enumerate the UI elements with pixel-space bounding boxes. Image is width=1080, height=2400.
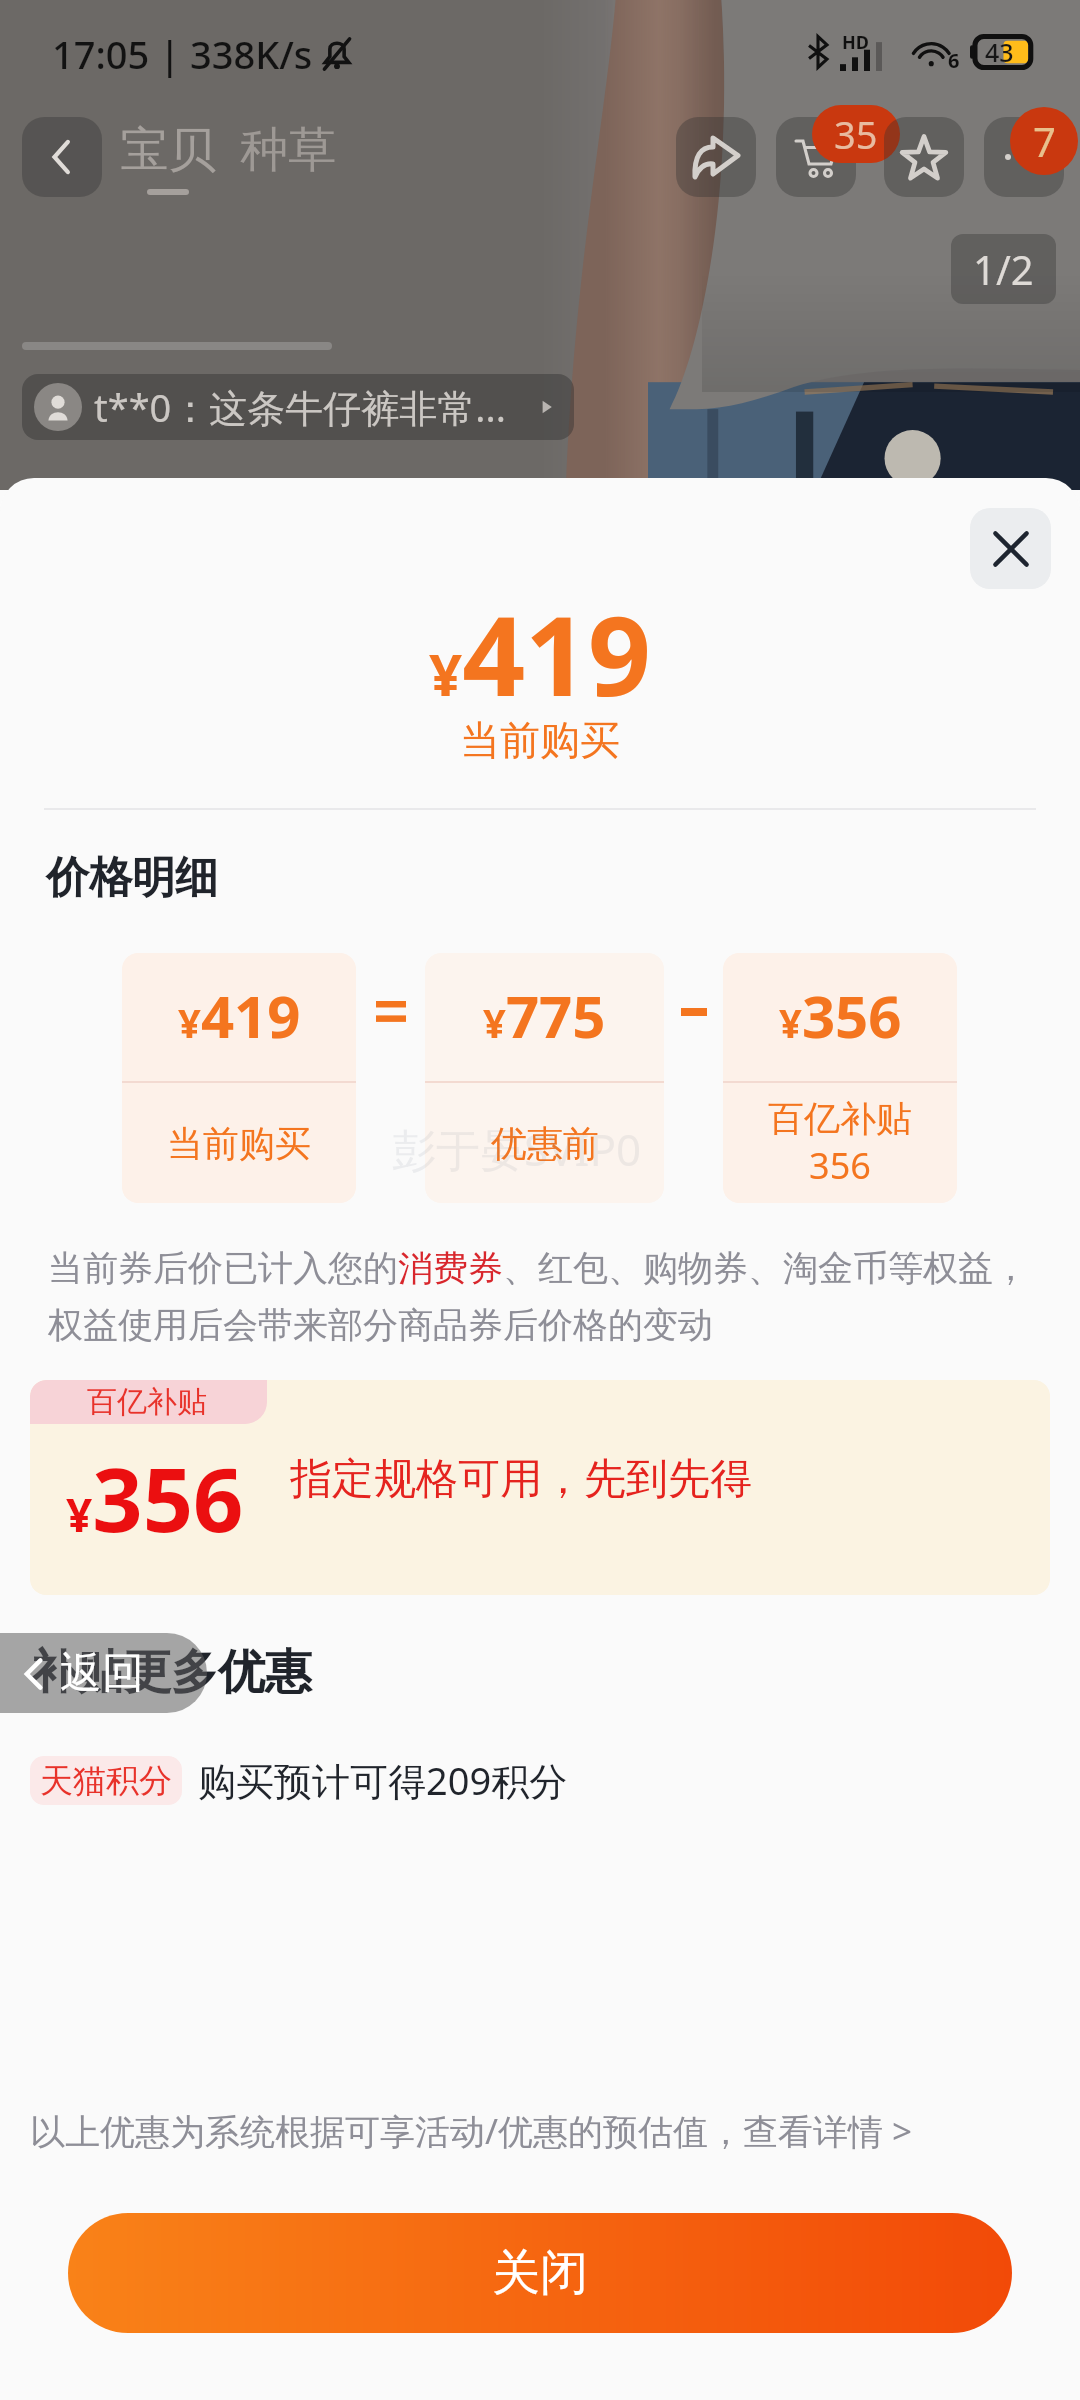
button[interactable]: 关闭: [68, 2213, 1012, 2333]
button[interactable]: More options: [984, 117, 1064, 197]
staticText: t**0：这条牛仔裤非常...: [94, 381, 506, 433]
staticText: 百亿补贴: [87, 1383, 207, 1421]
staticText: 17:05 | 338K/s: [52, 28, 313, 80]
staticText: ¥356: [66, 1438, 244, 1558]
button[interactable]: 以上优惠为系统根据可享活动/优惠的预估值，查看详情 >: [30, 2107, 913, 2155]
button[interactable]: Share: [676, 117, 756, 197]
button[interactable]: Close: [970, 508, 1051, 589]
button[interactable]: 1/2: [951, 234, 1056, 304]
staticText: ¥419: [429, 578, 651, 728]
staticText: HD: [842, 30, 869, 55]
staticText: 当前券后价已计入您的消费券、红包、购物券、淘金币等权益，权益使用后会带来部分商品…: [48, 1246, 1054, 1348]
staticText: 种草: [240, 120, 336, 180]
staticText: 6: [948, 47, 960, 74]
staticText: 43: [985, 35, 1014, 69]
staticText: 7: [1033, 114, 1056, 168]
staticText: ¥419: [178, 976, 301, 1055]
staticText: 补贴更多优惠: [30, 1643, 312, 1702]
staticText: 当前购买: [460, 715, 620, 765]
staticText: 彭于晏SVIP0: [392, 1119, 642, 1179]
staticText: 35: [834, 108, 878, 160]
staticText: 优惠前: [491, 1121, 599, 1166]
staticText: 356: [809, 1141, 871, 1190]
button[interactable]: 百亿补贴: [30, 1380, 1050, 1595]
staticText: 天猫积分: [40, 1760, 172, 1802]
staticText: 关闭: [492, 2243, 588, 2303]
button[interactable]: t**0：这条牛仔裤非常...: [22, 374, 574, 440]
button[interactable]: Favorite: [884, 117, 964, 197]
staticText: ¥775: [483, 976, 606, 1055]
staticText: 当前购买: [167, 1121, 311, 1166]
staticText: 返回: [60, 1647, 144, 1700]
button[interactable]: Shopping cart: [776, 117, 856, 197]
staticText: 宝贝: [120, 120, 216, 180]
staticText: ¥356: [779, 976, 902, 1055]
staticText: 指定规格可用，先到先得: [290, 1453, 752, 1506]
button[interactable]: 种草: [240, 120, 336, 180]
staticText: 1/2: [973, 242, 1034, 296]
button[interactable]: 宝贝: [120, 120, 216, 195]
button[interactable]: Back: [22, 117, 102, 197]
button[interactable]: Back: [0, 1633, 207, 1713]
staticText: 百亿补贴: [768, 1096, 912, 1141]
staticText: 购买预计可得209积分: [198, 1754, 568, 1806]
staticText: 价格明细: [46, 851, 218, 905]
